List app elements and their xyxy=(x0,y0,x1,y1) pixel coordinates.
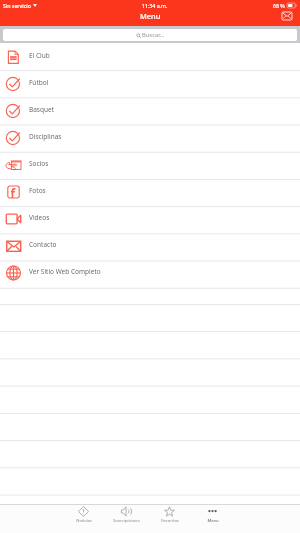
button[interactable]: Menu xyxy=(191,504,234,533)
staticText: Socios xyxy=(29,159,49,168)
staticText: Sin servicio xyxy=(3,2,31,9)
staticText: Fútbol xyxy=(29,78,49,87)
staticText: Suscripciones xyxy=(113,518,140,524)
button[interactable]: Contacto xyxy=(0,232,300,259)
staticText: El Club xyxy=(29,51,50,60)
button[interactable]: Noticias xyxy=(62,504,105,533)
staticText: 68 % xyxy=(273,2,285,9)
button[interactable]: Contacto xyxy=(280,10,294,22)
staticText: Menu xyxy=(207,518,219,524)
staticText: Noticias xyxy=(76,518,92,524)
button[interactable]: Socios xyxy=(0,151,300,178)
staticText: Disciplinas xyxy=(29,132,62,141)
staticText: Contacto xyxy=(29,240,57,249)
button[interactable]: Suscripciones xyxy=(105,504,148,533)
button[interactable]: Favoritos xyxy=(148,504,191,533)
button[interactable]: Basquet xyxy=(0,97,300,124)
staticText: Videos xyxy=(29,213,50,222)
staticText: Fotos xyxy=(29,186,46,195)
staticText: 11:34 a.m. xyxy=(142,2,168,9)
button[interactable]: Fotos xyxy=(0,178,300,205)
button[interactable]: El Club xyxy=(0,43,300,70)
staticText: Ver Sitio Web Completo xyxy=(29,267,101,276)
staticText: Favoritos xyxy=(161,518,179,524)
button[interactable]: Ver Sitio Web Completo xyxy=(0,259,300,286)
button[interactable]: Videos xyxy=(0,205,300,232)
button[interactable]: Fútbol xyxy=(0,70,300,97)
staticText: Basquet xyxy=(29,105,55,114)
staticText: Buscar... xyxy=(142,31,165,39)
button[interactable]: Disciplinas xyxy=(0,124,300,151)
button[interactable]: Buscar... xyxy=(3,29,297,41)
staticText: Menu xyxy=(140,11,161,21)
